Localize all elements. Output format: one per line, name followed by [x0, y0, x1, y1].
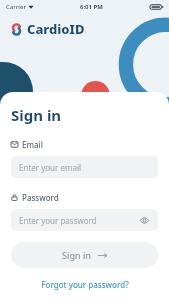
staticText: Enter your email: [19, 162, 82, 173]
staticText: Sign in: [11, 105, 62, 125]
button[interactable]: Show password: [138, 214, 150, 226]
button[interactable]: CardioID logo: [10, 20, 85, 38]
staticText: Email: [22, 139, 43, 150]
button[interactable]: Enter your password: [11, 209, 158, 231]
button[interactable]: Sign in: [11, 242, 158, 268]
staticText: Carrier: [6, 3, 26, 11]
staticText: 6:01 PM: [80, 3, 103, 11]
staticText: Enter your password: [19, 215, 97, 226]
staticText: Forgot your password?: [41, 279, 129, 290]
staticText: Password: [22, 192, 59, 203]
staticText: CardioID: [27, 20, 85, 38]
staticText: Sign in: [62, 249, 92, 261]
button[interactable]: Enter your email: [11, 156, 158, 178]
button[interactable]: Forgot your password?: [11, 279, 158, 290]
